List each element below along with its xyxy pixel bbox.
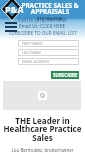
staticText: LAST NAME (22, 50, 42, 55)
button[interactable]: Menu (5, 22, 17, 32)
staticText: EMAIL ADDRESS (22, 59, 50, 64)
button[interactable]: Call Us: (818) 999-9999 (18, 17, 67, 23)
button[interactable]: EMAIL ADDRESS (18, 58, 79, 65)
staticText: FIRST NAME (22, 41, 43, 46)
button[interactable]: SUBSCRIBE (51, 71, 79, 79)
staticText: P&A (5, 3, 24, 15)
button[interactable]: Email Us: CLICK HERE (19, 23, 66, 29)
button[interactable]: FIRST NAME (18, 40, 79, 47)
button[interactable]: Loading (38, 91, 47, 100)
button[interactable]: LAST NAME (18, 49, 79, 56)
staticText: 813.398.0500 (37, 16, 63, 21)
staticText: SUBSCRIBE (53, 72, 78, 78)
staticText: Lou Bermudez, broker/owner (11, 147, 74, 153)
staticText: THE Leader in Healthcare Practice Sales (3, 115, 82, 143)
staticText: PRACTICE SALES & APPRAISALS (21, 1, 79, 16)
button[interactable]: SUBSCRIBE TO OUR EMAIL LIST (9, 30, 77, 36)
